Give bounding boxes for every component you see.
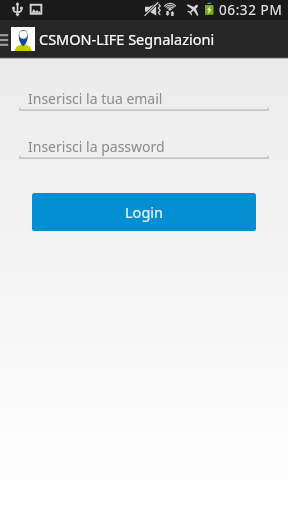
button[interactable]: Open navigation drawer bbox=[0, 20, 10, 57]
staticText: CSMON-LIFE Segnalazioni bbox=[39, 29, 215, 49]
staticText: Inserisci la tua email bbox=[28, 89, 163, 108]
staticText: Inserisci la password bbox=[28, 137, 165, 156]
staticText: 06:32 PM bbox=[219, 1, 283, 19]
button[interactable]: Inserisci la tua email bbox=[19, 85, 269, 111]
staticText: Login bbox=[125, 202, 163, 222]
button[interactable]: Login bbox=[32, 193, 256, 231]
button[interactable]: Inserisci la password bbox=[19, 133, 269, 159]
